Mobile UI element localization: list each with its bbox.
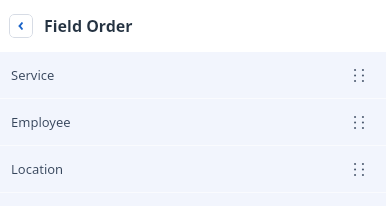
staticText: Employee: [11, 113, 71, 131]
button[interactable]: Reorder Employee: [348, 111, 370, 133]
button[interactable]: Reorder Location: [348, 158, 370, 180]
button[interactable]: Back: [9, 14, 33, 38]
staticText: Location: [11, 160, 64, 178]
staticText: Service: [11, 66, 55, 84]
button[interactable]: Reorder Service: [348, 64, 370, 86]
staticText: Field Order: [44, 15, 133, 37]
button[interactable]: Location: [0, 146, 386, 192]
button[interactable]: Employee: [0, 99, 386, 145]
button[interactable]: Service: [0, 52, 386, 98]
